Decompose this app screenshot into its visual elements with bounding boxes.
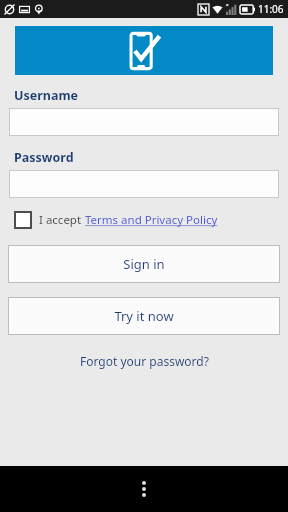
button[interactable]: I accept — [14, 211, 274, 229]
other: App logo — [126, 31, 162, 71]
button[interactable] — [9, 170, 279, 198]
staticText: Sign in — [123, 255, 165, 273]
staticText: Password — [14, 149, 74, 166]
button[interactable]: Forgot your password? — [0, 353, 288, 369]
staticText: Forgot your password? — [80, 353, 209, 369]
button[interactable]: Terms and Privacy Policy — [85, 212, 218, 228]
button[interactable]: Try it now — [8, 297, 280, 335]
staticText: I accept — [39, 212, 85, 228]
button[interactable]: More options — [124, 469, 164, 509]
staticText: 11:06 — [258, 2, 284, 16]
button[interactable] — [9, 108, 279, 136]
staticText: Username — [14, 87, 79, 104]
button[interactable]: Sign in — [8, 245, 280, 283]
staticText: Try it now — [114, 307, 174, 325]
